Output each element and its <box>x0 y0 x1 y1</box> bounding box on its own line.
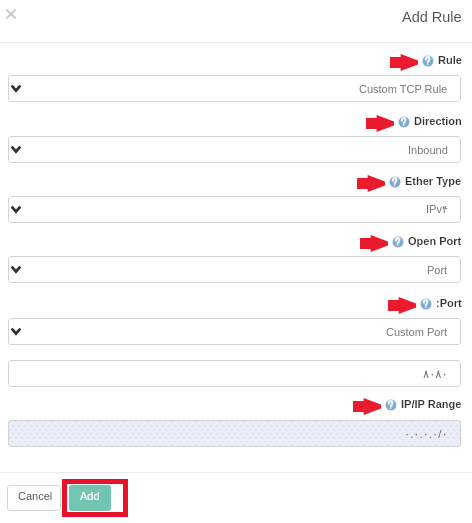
staticText: Add Rule <box>402 9 462 25</box>
staticText: Custom Port <box>386 326 448 338</box>
button[interactable]: Custom Port <box>8 318 461 345</box>
staticText: Open Port <box>408 235 462 247</box>
button[interactable]: Inbound <box>8 136 461 163</box>
button[interactable]: Cancel <box>7 485 61 511</box>
staticText: Inbound <box>408 144 448 156</box>
staticText: Custom TCP Rule <box>359 83 448 95</box>
button[interactable]: Custom TCP Rule <box>8 75 461 102</box>
button[interactable]: Close dialog <box>7 10 15 18</box>
staticText: Ether Type <box>405 175 462 187</box>
button[interactable]: IPv۴ <box>8 196 461 223</box>
staticText: Port <box>427 264 448 276</box>
staticText: Add <box>80 490 100 502</box>
button[interactable]: Port <box>8 256 461 283</box>
staticText: ۸۰۸۰ <box>423 367 448 380</box>
staticText: :Port <box>436 297 462 309</box>
staticText: IP/IP Range <box>401 398 462 410</box>
staticText: IPv۴ <box>426 203 448 216</box>
staticText: ۰.۰.۰.۰/۰ <box>404 427 448 440</box>
button[interactable]: Add <box>69 485 111 511</box>
button[interactable]: ۰.۰.۰.۰/۰ <box>8 420 461 447</box>
button[interactable]: ۸۰۸۰ <box>8 360 461 387</box>
staticText: Direction <box>414 115 462 127</box>
staticText: Rule <box>438 54 462 66</box>
staticText: Cancel <box>18 490 53 502</box>
